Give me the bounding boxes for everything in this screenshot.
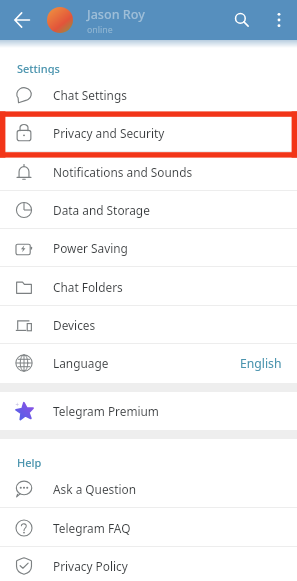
button[interactable]: Privacy and Security xyxy=(0,114,297,152)
button[interactable]: Notifications and Sounds xyxy=(0,153,297,191)
staticText: Devices xyxy=(53,317,96,333)
button[interactable]: Chat Settings xyxy=(0,76,297,114)
button[interactable]: Ask a Question xyxy=(0,470,297,508)
button[interactable]: Telegram FAQ xyxy=(0,509,297,547)
staticText: Telegram FAQ xyxy=(53,520,131,536)
staticText: Power Saving xyxy=(53,240,128,256)
staticText: Telegram Premium xyxy=(53,403,159,419)
staticText: Privacy Policy xyxy=(53,558,128,574)
button[interactable]: Privacy Policy xyxy=(0,547,297,581)
staticText: English xyxy=(240,355,282,372)
staticText: Chat Settings xyxy=(53,87,127,103)
button[interactable]: Power Saving xyxy=(0,229,297,267)
staticText: Data and Storage xyxy=(53,202,150,218)
button[interactable]: Search xyxy=(224,0,260,40)
staticText: Help xyxy=(17,455,42,469)
button[interactable]: Telegram Premium xyxy=(0,392,297,430)
staticText: online xyxy=(87,24,113,36)
staticText: Settings xyxy=(17,61,60,75)
staticText: Ask a Question xyxy=(53,481,137,497)
button[interactable]: Chat Folders xyxy=(0,268,297,306)
staticText: Privacy and Security xyxy=(53,125,165,141)
button[interactable]: Data and Storage xyxy=(0,191,297,229)
staticText: Chat Folders xyxy=(53,279,123,295)
button[interactable]: Language xyxy=(0,344,297,382)
staticText: Language xyxy=(53,355,109,371)
staticText: Jason Roy xyxy=(87,6,145,23)
button[interactable]: More options xyxy=(263,0,294,40)
staticText: Notifications and Sounds xyxy=(53,164,193,180)
button[interactable]: Devices xyxy=(0,306,297,344)
button[interactable]: Back xyxy=(4,0,39,40)
